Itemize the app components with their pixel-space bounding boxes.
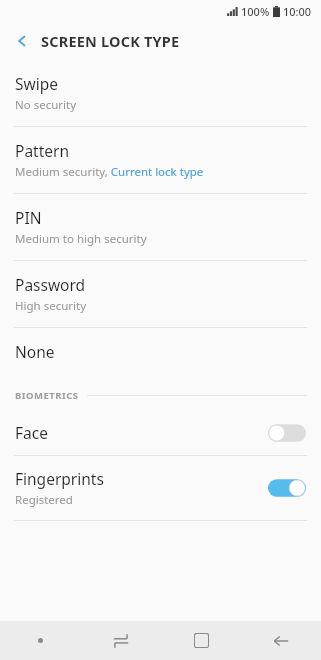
button[interactable]: Toggle off — [268, 423, 306, 443]
button[interactable]: Pattern — [0, 127, 321, 193]
button[interactable]: Password — [0, 261, 321, 327]
staticText: BIOMETRICS — [15, 389, 79, 402]
staticText: 10:00 — [283, 4, 312, 19]
button[interactable]: Back — [8, 27, 36, 55]
staticText: Medium security, Current lock type — [15, 164, 204, 180]
button[interactable]: Home — [161, 621, 241, 660]
staticText: High security — [15, 298, 87, 314]
staticText: 100% — [241, 4, 270, 19]
staticText: Medium to high security — [15, 231, 147, 247]
button[interactable]: Swipe — [0, 60, 321, 126]
button[interactable]: Face — [0, 410, 321, 455]
button[interactable]: Menu indicator — [0, 621, 81, 660]
staticText: Fingerprints — [15, 468, 104, 489]
staticText: PIN — [15, 207, 42, 228]
button[interactable]: PIN — [0, 194, 321, 260]
button[interactable]: Back — [241, 621, 321, 660]
button[interactable]: None — [0, 328, 321, 375]
staticText: SCREEN LOCK TYPE — [41, 31, 180, 51]
staticText: Swipe — [15, 73, 58, 94]
button[interactable]: Toggle on — [268, 478, 306, 498]
staticText: Pattern — [15, 140, 69, 161]
staticText: Registered — [15, 492, 73, 508]
button[interactable]: Fingerprints — [0, 456, 321, 520]
staticText: Face — [15, 422, 48, 443]
staticText: None — [15, 341, 55, 362]
staticText: No security — [15, 97, 77, 113]
button[interactable]: Recent apps — [81, 621, 161, 660]
staticText: Password — [15, 274, 86, 295]
